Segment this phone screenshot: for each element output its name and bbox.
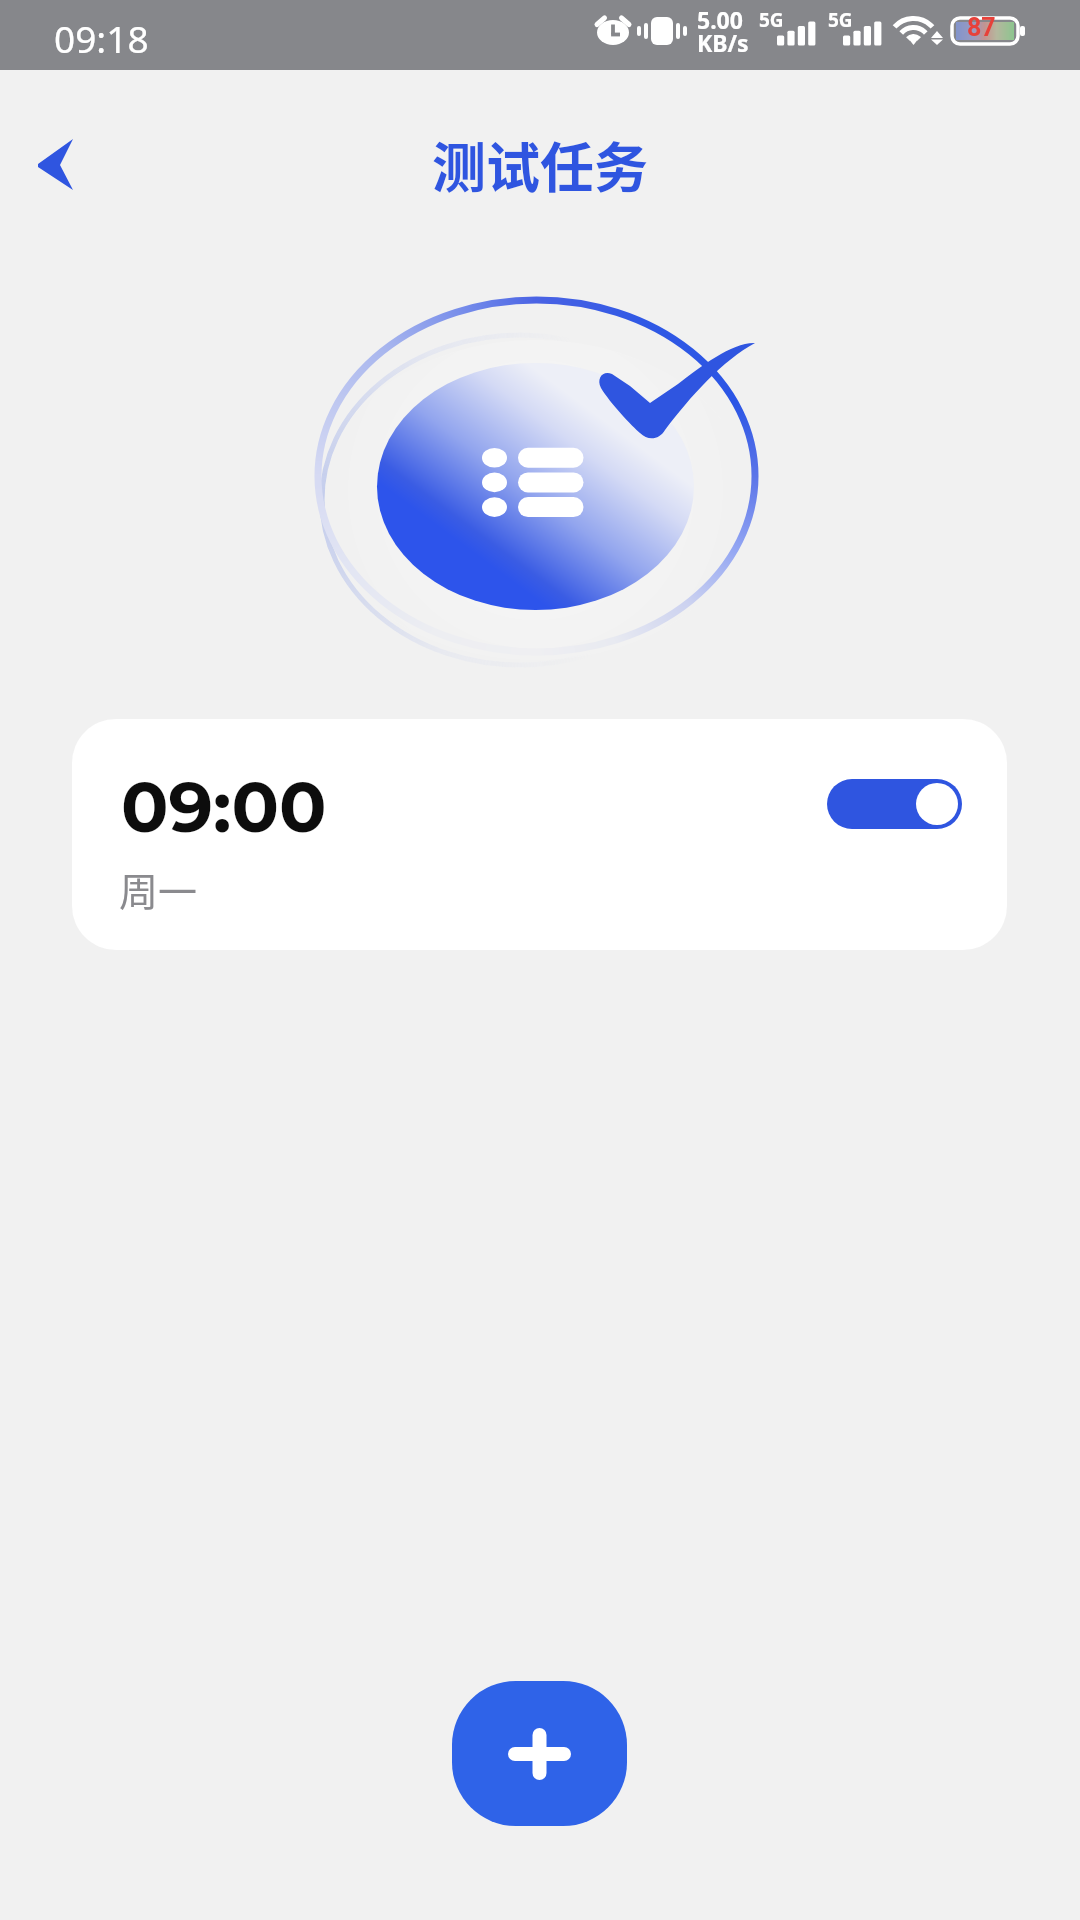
button[interactable]: Toggle alarm xyxy=(827,779,962,829)
button[interactable]: Back xyxy=(14,120,98,210)
staticText: 5G xyxy=(828,7,853,33)
button[interactable]: Add xyxy=(452,1681,627,1826)
button[interactable]: 09:00 xyxy=(72,719,1007,950)
staticText: 09:00 xyxy=(121,764,327,849)
staticText: 周一 xyxy=(119,861,198,917)
staticText: 5.00 xyxy=(697,4,743,35)
staticText: 测试任务 xyxy=(432,125,648,203)
staticText: KB/s xyxy=(697,27,749,58)
staticText: 5G xyxy=(759,7,784,33)
staticText: 87 xyxy=(967,13,996,42)
staticText: 09:18 xyxy=(54,13,149,63)
